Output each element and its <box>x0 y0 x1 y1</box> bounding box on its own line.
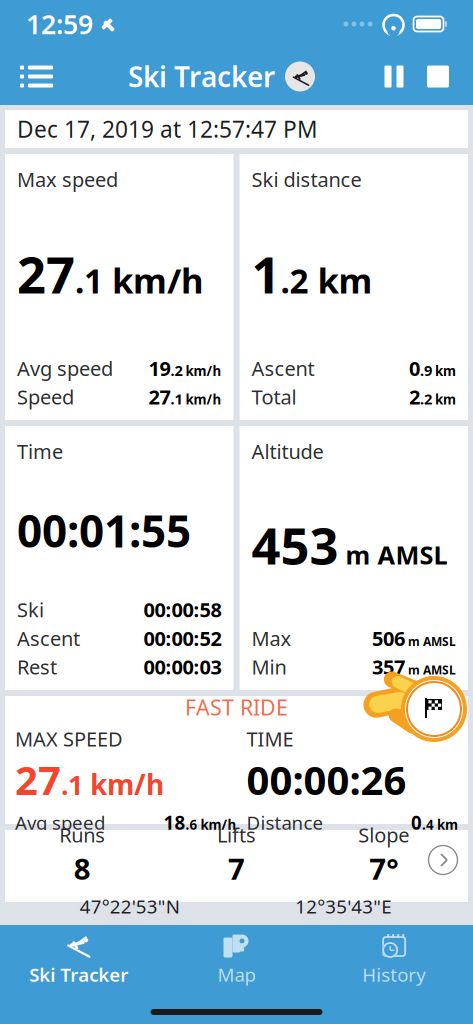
staticText: 7 <box>228 849 245 888</box>
staticText: m AMSL <box>405 633 456 649</box>
staticText: km <box>432 362 456 380</box>
staticText: Ascent <box>251 355 314 381</box>
button[interactable]: Stop <box>423 56 453 96</box>
staticText: 47°22'53"N <box>80 894 180 919</box>
staticText: 0 <box>411 810 422 835</box>
button[interactable]: Menu <box>20 54 64 98</box>
staticText: Max <box>251 625 291 651</box>
staticText: km <box>432 390 456 408</box>
button[interactable]: Time <box>5 426 233 690</box>
button[interactable]: Ski distance <box>239 154 468 420</box>
staticText: 7° <box>369 849 398 888</box>
button[interactable]: Map <box>158 925 315 993</box>
button[interactable]: Runs <box>5 830 468 902</box>
staticText: 00:00:03 <box>143 653 221 680</box>
staticText: Ski Tracker <box>29 962 128 987</box>
staticText: 1 <box>251 240 280 307</box>
staticText: 00:00:52 <box>143 625 221 651</box>
staticText: MAX SPEED <box>15 725 123 752</box>
staticText: 00:00:26 <box>246 753 406 806</box>
staticText: Altitude <box>251 438 323 465</box>
staticText: 453 <box>251 511 338 578</box>
staticText: 18 <box>163 810 185 835</box>
staticText: 27 <box>15 753 61 806</box>
staticText: .4 <box>422 816 434 833</box>
staticText: .2 <box>280 258 308 303</box>
staticText: 506 <box>372 625 405 651</box>
staticText: Min <box>251 653 286 680</box>
button[interactable]: Dec 17, 2019 at 12:57:47 PM <box>5 110 468 148</box>
staticText: 12:59 <box>26 6 93 42</box>
staticText: Runs <box>59 821 105 848</box>
staticText: 00:01:55 <box>17 501 191 560</box>
staticText: Avg speed <box>17 355 113 381</box>
staticText: km/h <box>182 362 221 380</box>
staticText: Dec 17, 2019 at 12:57:47 PM <box>17 114 318 144</box>
staticText: Slope <box>358 821 409 848</box>
staticText: 8 <box>74 849 91 888</box>
staticText: Avg speed <box>15 810 105 835</box>
staticText: Speed <box>17 383 74 410</box>
staticText: 19 <box>148 355 170 381</box>
staticText: Ski Tracker <box>128 58 275 95</box>
staticText: .1 <box>75 258 103 303</box>
staticText: 0 <box>409 355 420 381</box>
staticText: 27 <box>148 383 170 410</box>
staticText: Map <box>217 962 255 987</box>
button[interactable]: Altitude <box>239 426 468 690</box>
staticText: Total <box>251 383 296 410</box>
staticText: Max speed <box>17 166 118 193</box>
staticText: Time <box>17 438 63 465</box>
button[interactable]: More details <box>421 838 465 882</box>
staticText: km <box>434 816 458 833</box>
button[interactable]: Max speed <box>5 154 233 420</box>
staticText: TIME <box>246 725 293 752</box>
staticText: km/h <box>83 766 164 803</box>
staticText: 00:00:58 <box>143 596 221 623</box>
staticText: .9 <box>420 360 432 380</box>
staticText: 12°35'43"E <box>295 894 391 919</box>
staticText: .1 <box>61 767 83 802</box>
staticText: Ski <box>17 596 44 623</box>
staticText: 2 <box>409 383 420 410</box>
staticText: .1 <box>170 389 182 409</box>
staticText: .2 <box>170 360 182 380</box>
staticText: Distance <box>246 810 323 835</box>
staticText: FAST RIDE <box>185 693 288 721</box>
staticText: Ski distance <box>251 166 361 193</box>
staticText: Lifts <box>217 821 256 848</box>
button[interactable]: History <box>315 925 473 993</box>
staticText: m AMSL <box>405 662 456 678</box>
staticText: .2 <box>420 389 432 409</box>
staticText: 357 <box>372 653 405 680</box>
button[interactable]: Ski Tracker <box>0 925 158 993</box>
staticText: 27 <box>17 240 75 307</box>
staticText: km/h <box>182 390 221 408</box>
button[interactable]: FAST RIDE <box>5 696 468 824</box>
staticText: Rest <box>17 653 57 680</box>
staticText: km/h <box>197 816 236 833</box>
staticText: m AMSL <box>338 538 447 571</box>
staticText: Ascent <box>17 625 80 651</box>
staticText: History <box>362 962 426 987</box>
staticText: km <box>308 257 372 303</box>
button[interactable]: Pause <box>379 56 409 96</box>
staticText: km/h <box>103 257 204 303</box>
staticText: .6 <box>185 816 197 833</box>
